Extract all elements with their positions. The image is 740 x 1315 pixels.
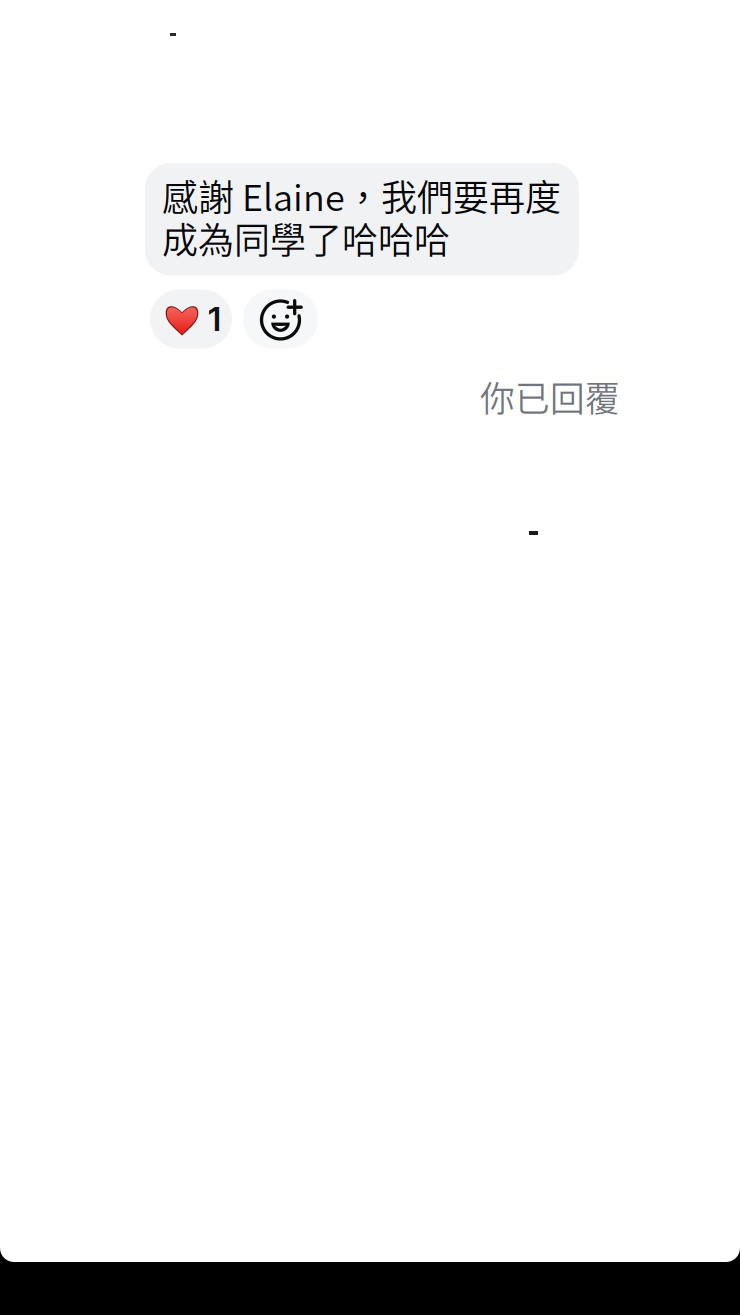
staticText: 感謝 Elaine，我們要再度 成為同學了哈哈哈 [162,174,561,259]
staticText: 你已回覆 [480,371,620,422]
button[interactable]: 感謝 Elaine，我們要再度 成為同學了哈哈哈 [145,163,579,275]
button[interactable]: Add reaction [243,289,318,348]
staticText: 1 [208,299,221,339]
button[interactable]: Heart reaction, 1 [150,289,232,348]
